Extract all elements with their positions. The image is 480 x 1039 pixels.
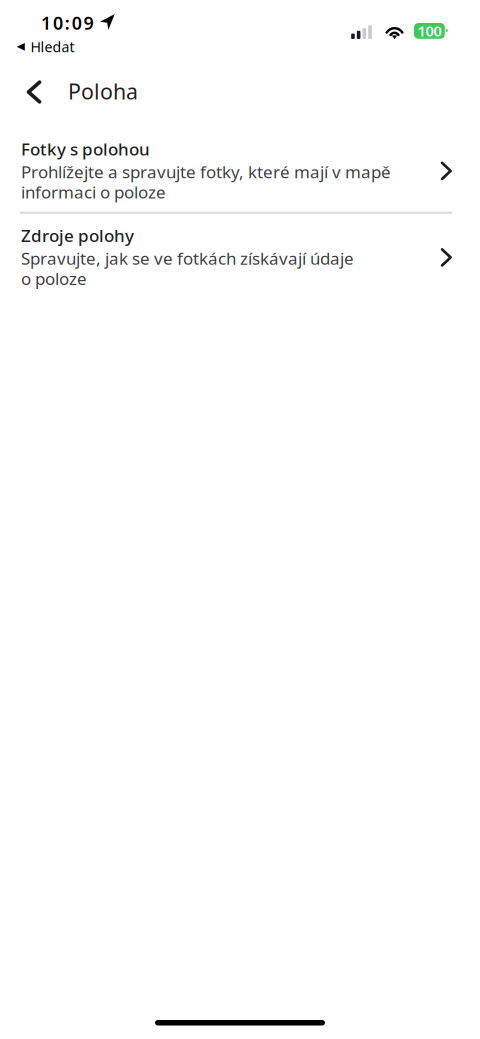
staticText: Fotky s polohou xyxy=(21,137,150,160)
button[interactable]: Zdroje polohy xyxy=(0,229,480,290)
staticText: 1 xyxy=(41,11,51,35)
staticText: 0 xyxy=(72,11,82,35)
staticText: Zdroje polohy xyxy=(21,224,134,247)
staticText: informaci o poloze xyxy=(21,180,166,203)
staticText: 0 xyxy=(53,11,63,35)
staticText: Prohlížejte a spravujte fotky, které maj… xyxy=(21,160,391,183)
button[interactable]: Fotky s polohou xyxy=(0,142,480,203)
staticText: Poloha xyxy=(68,77,138,105)
staticText: 100 xyxy=(417,21,441,41)
staticText: Hledat xyxy=(30,37,74,56)
staticText: : xyxy=(65,11,70,35)
button[interactable]: Back xyxy=(11,69,57,115)
staticText: 9 xyxy=(84,11,94,35)
button[interactable]: Hledat xyxy=(13,33,78,60)
staticText: Spravujte, jak se ve fotkách získávají ú… xyxy=(21,246,354,270)
staticText: o poloze xyxy=(21,267,87,290)
